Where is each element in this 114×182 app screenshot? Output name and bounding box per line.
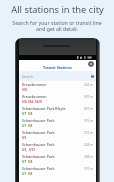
staticText: Transit Stations bbox=[43, 65, 72, 70]
button[interactable]: Scharnhauser Park bbox=[19, 129, 96, 141]
staticText: Kreuzbrunnen bbox=[22, 82, 47, 87]
staticText: U8 bbox=[28, 172, 33, 176]
button[interactable]: Scharnhauser Park bbox=[19, 141, 96, 153]
button[interactable]: Settings bbox=[88, 61, 94, 67]
staticText: 272 m bbox=[84, 131, 93, 135]
staticText: 687 m bbox=[84, 95, 93, 99]
staticText: Scharnhauser Park bbox=[22, 118, 55, 123]
staticText: U8 bbox=[28, 160, 33, 164]
staticText: S6/V bbox=[35, 100, 42, 104]
staticText: 897 m bbox=[84, 107, 93, 111]
button[interactable]: Scharnhauser Park bbox=[19, 117, 96, 129]
staticText: S62 bbox=[28, 100, 34, 104]
staticText: U5 bbox=[22, 136, 27, 140]
button[interactable]: Kreuzbrunnen bbox=[19, 81, 96, 93]
staticText: U8 bbox=[28, 124, 33, 128]
staticText: S/U bbox=[22, 88, 28, 92]
staticText: 248 m bbox=[84, 155, 93, 159]
staticText: Scharnhauser Park bbox=[22, 130, 55, 135]
staticText: All stations in the city bbox=[11, 3, 104, 16]
button[interactable]: Search bbox=[19, 71, 96, 81]
staticText: 210 m bbox=[84, 167, 93, 171]
staticText: S/6 bbox=[22, 100, 27, 104]
staticText: Kreuzbrunnen bbox=[22, 94, 47, 99]
button[interactable]: Scharnhauser Park Bleyle bbox=[19, 105, 96, 117]
staticText: Scharnhauser Park Bleyle bbox=[22, 106, 66, 111]
staticText: U5, bbox=[22, 148, 28, 152]
staticText: Scharnhauser Park bbox=[22, 166, 55, 171]
staticText: U7 bbox=[22, 124, 27, 128]
staticText: U7 bbox=[22, 172, 27, 176]
staticText: U7 bbox=[22, 160, 27, 164]
staticText: Scharnhauser Park bbox=[22, 142, 55, 147]
button[interactable]: Scharnhauser Park bbox=[19, 153, 96, 165]
staticText: 244 m bbox=[84, 143, 93, 147]
button[interactable]: Scharnhauser Park bbox=[19, 165, 96, 177]
button[interactable]: Kreuzbrunnen bbox=[19, 93, 96, 105]
staticText: 915 m bbox=[84, 119, 93, 123]
staticText: 242 m bbox=[84, 83, 93, 87]
staticText: U7 bbox=[22, 112, 27, 116]
staticText: Scharnhauser Park bbox=[22, 154, 55, 159]
staticText: Search for your station or transit line … bbox=[12, 19, 102, 32]
staticText: Search bbox=[22, 74, 33, 79]
staticText: U21 bbox=[29, 148, 36, 152]
staticText: U8 bbox=[28, 112, 33, 116]
